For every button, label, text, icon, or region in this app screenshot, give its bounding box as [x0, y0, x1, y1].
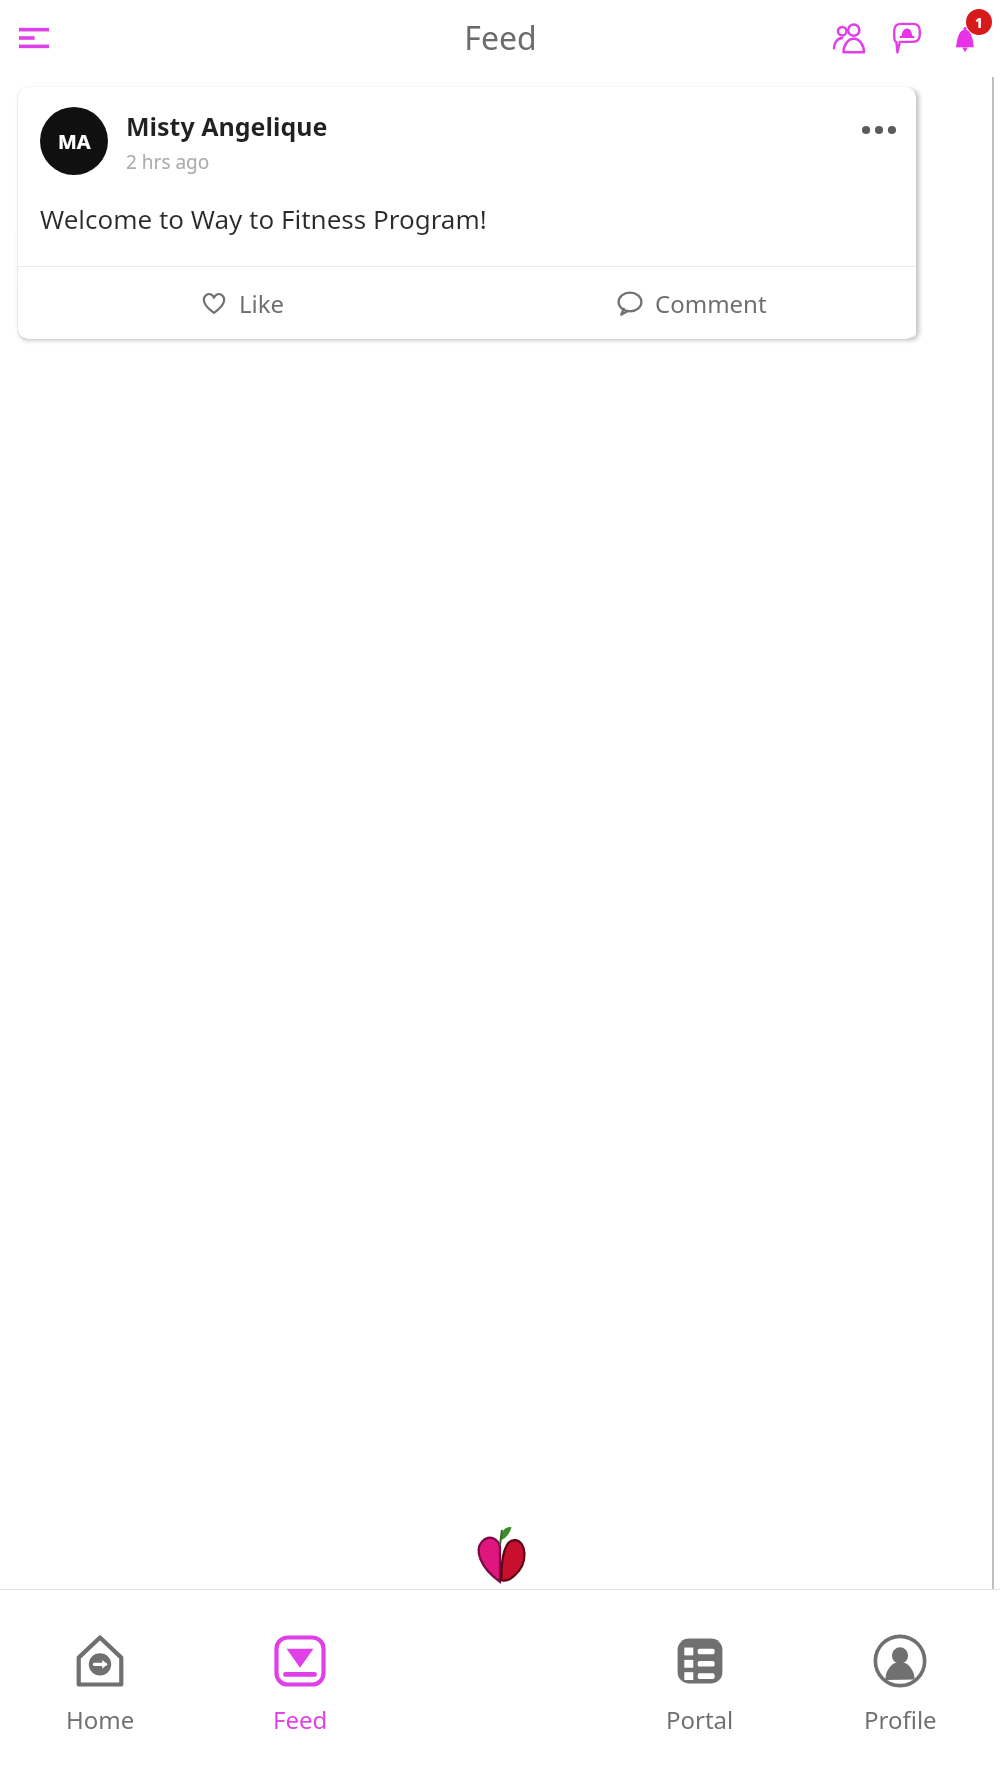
- button[interactable]: Portal: [600, 1590, 800, 1778]
- staticText: 1: [975, 13, 984, 32]
- button[interactable]: Like: [18, 267, 467, 339]
- button[interactable]: Feed: [200, 1590, 400, 1778]
- button[interactable]: Home: [0, 1590, 200, 1778]
- staticText: Feed: [273, 1703, 328, 1736]
- button[interactable]: Friends: [820, 9, 878, 67]
- staticText: MA: [58, 128, 91, 155]
- button[interactable]: Menu: [8, 12, 60, 64]
- staticText: 2 hrs ago: [126, 149, 210, 175]
- staticText: Profile: [864, 1703, 937, 1736]
- button[interactable]: More options: [856, 107, 902, 153]
- staticText: Welcome to Way to Fitness Program!: [40, 201, 487, 236]
- staticText: Feed: [464, 16, 537, 60]
- button[interactable]: Notifications: [936, 9, 994, 67]
- staticText: Portal: [666, 1703, 734, 1736]
- button[interactable]: MA: [18, 87, 916, 339]
- staticText: Comment: [655, 287, 767, 320]
- button[interactable]: Messages: [878, 9, 936, 67]
- staticText: Like: [239, 287, 285, 320]
- button[interactable]: Profile: [800, 1590, 1000, 1778]
- staticText: Misty Angelique: [126, 109, 328, 143]
- staticText: Home: [66, 1703, 135, 1736]
- button[interactable]: Comment: [467, 267, 916, 339]
